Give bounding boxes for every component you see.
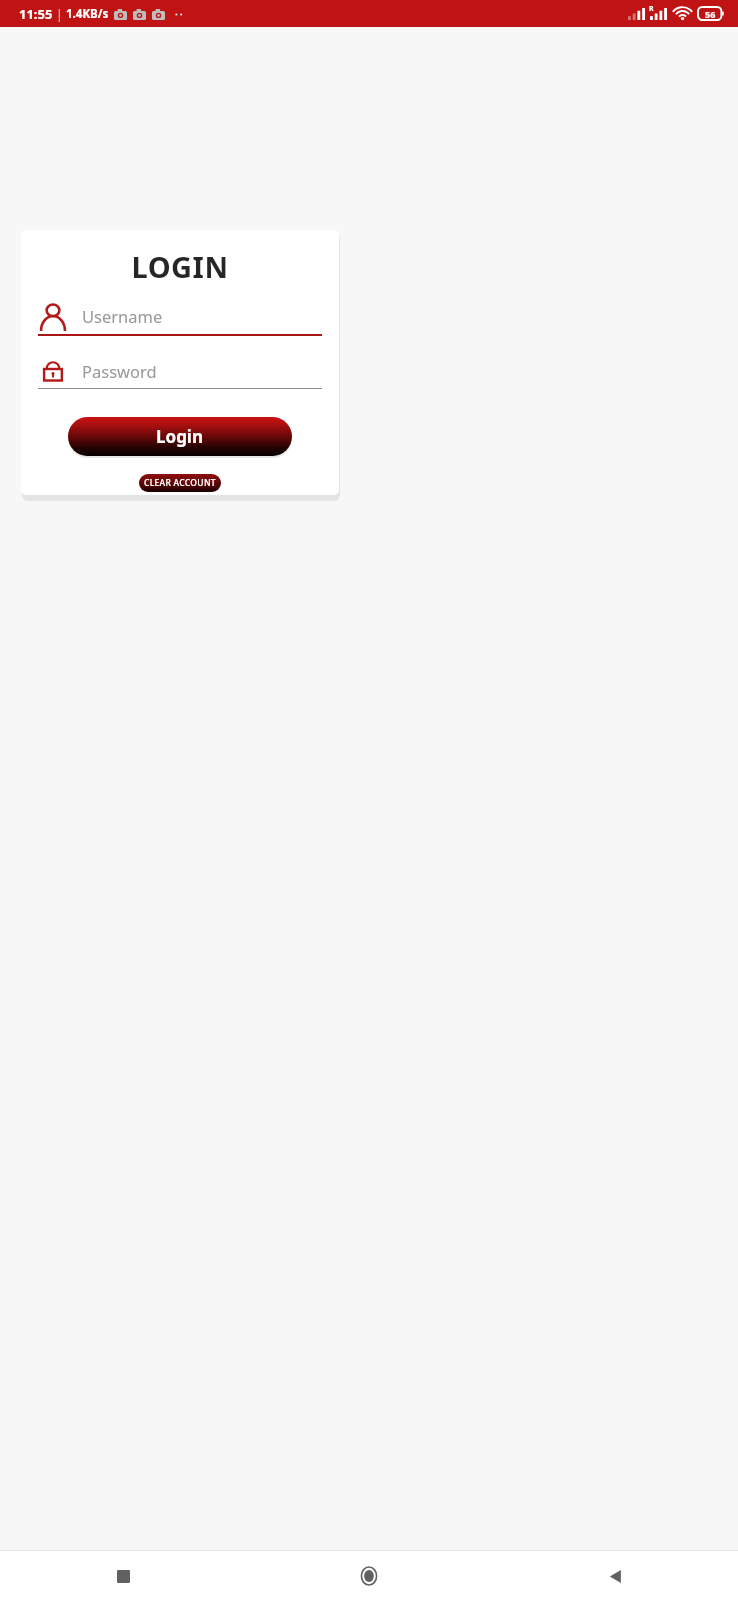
button[interactable]: Recent apps: [100, 1553, 146, 1599]
staticText: Login: [156, 425, 204, 448]
button[interactable]: CLEAR ACCOUNT: [139, 474, 221, 492]
staticText: 1.4KB/s: [66, 6, 109, 22]
staticText: 11:55: [19, 5, 53, 23]
button[interactable]: Password: [38, 358, 322, 389]
staticText: R: [649, 4, 654, 14]
staticText: CLEAR ACCOUNT: [144, 477, 216, 489]
staticText: |: [56, 6, 63, 22]
staticText: LOGIN: [21, 247, 339, 286]
button[interactable]: Login: [68, 417, 292, 456]
button[interactable]: Back: [592, 1553, 638, 1599]
button[interactable]: Home: [346, 1553, 392, 1599]
staticText: Password: [82, 360, 157, 382]
staticText: Username: [82, 305, 163, 327]
staticText: 56: [705, 8, 716, 20]
button[interactable]: Username: [38, 302, 322, 336]
